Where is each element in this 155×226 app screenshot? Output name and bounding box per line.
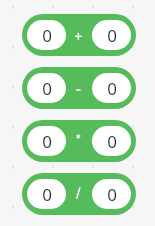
button[interactable]: 0 [27, 20, 66, 50]
button[interactable]: 0 [22, 14, 136, 56]
button[interactable]: Multiply [66, 120, 92, 162]
staticText: 0 [42, 77, 52, 100]
staticText: 0 [107, 183, 117, 206]
button[interactable]: 0 [22, 120, 136, 162]
button[interactable]: 0 [22, 173, 136, 215]
staticText: 0 [107, 130, 117, 153]
staticText: 0 [42, 183, 52, 206]
staticText: 0 [42, 130, 52, 153]
staticText: 0 [42, 24, 52, 47]
button[interactable]: Subtract [66, 67, 92, 109]
button[interactable]: Add [66, 14, 92, 56]
button[interactable]: 0 [92, 73, 131, 103]
button[interactable]: 0 [27, 126, 66, 156]
button[interactable]: 0 [27, 179, 66, 209]
staticText: 0 [107, 24, 117, 47]
button[interactable]: 0 [92, 126, 131, 156]
staticText: 0 [107, 77, 117, 100]
button[interactable]: 0 [92, 20, 131, 50]
button[interactable]: 0 [27, 73, 66, 103]
button[interactable]: 0 [92, 179, 131, 209]
button[interactable]: Divide [66, 173, 92, 215]
button[interactable]: 0 [22, 67, 136, 109]
